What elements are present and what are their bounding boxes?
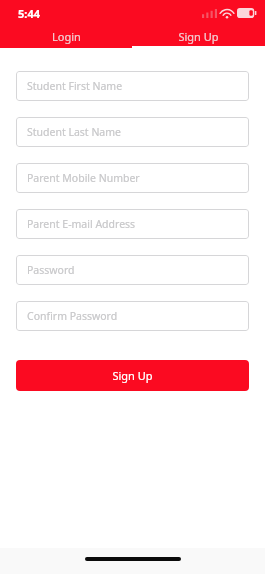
staticText: Login (52, 29, 81, 44)
button[interactable]: Parent E-mail Address (16, 209, 249, 239)
other: Home (85, 557, 181, 561)
button[interactable]: Student Last Name (16, 117, 249, 147)
button[interactable]: Password (16, 255, 249, 285)
staticText: Parent E-mail Address (27, 217, 136, 231)
button[interactable]: Sign Up (16, 360, 249, 391)
staticText: Sign Up (112, 368, 153, 383)
staticText: Sign Up (178, 29, 219, 44)
staticText: Parent Mobile Number (27, 171, 140, 185)
staticText: 5:44 (18, 6, 40, 21)
staticText: Password (27, 263, 75, 277)
staticText: Student First Name (27, 79, 123, 93)
button[interactable]: Login (0, 26, 132, 46)
button[interactable]: Parent Mobile Number (16, 163, 249, 193)
staticText: Student Last Name (27, 125, 121, 139)
staticText: Confirm Password (27, 309, 118, 323)
button[interactable]: Student First Name (16, 71, 249, 101)
button[interactable]: Sign Up (132, 26, 265, 46)
button[interactable]: Confirm Password (16, 301, 249, 331)
